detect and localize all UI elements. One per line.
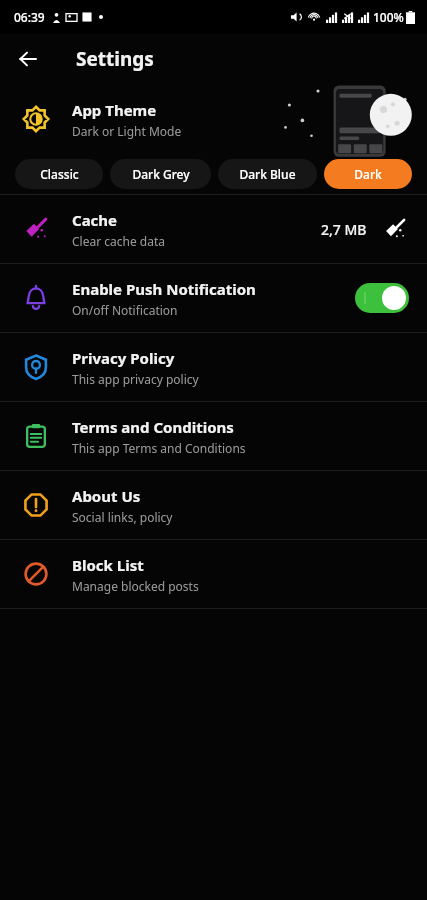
staticText: This app Terms and Conditions — [72, 440, 246, 456]
staticText: Dark Blue — [239, 166, 296, 182]
button[interactable]: Cache — [0, 195, 427, 263]
staticText: About Us — [72, 486, 141, 506]
button[interactable]: About Us — [0, 471, 427, 539]
button[interactable]: Dark Grey — [110, 159, 211, 189]
button[interactable]: Enable Push Notification toggle — [355, 283, 409, 313]
staticText: Privacy Policy — [72, 348, 175, 368]
button[interactable]: Classic — [15, 159, 103, 189]
button[interactable]: Terms and Conditions — [0, 402, 427, 470]
staticText: App Theme — [72, 100, 157, 120]
staticText: Dark Grey — [132, 166, 190, 182]
staticText: On/off Notification — [72, 302, 178, 318]
staticText: Dark or Light Mode — [72, 123, 182, 139]
button[interactable]: Dark — [324, 159, 412, 189]
staticText: 2,7 MB — [321, 220, 367, 239]
staticText: This app privacy policy — [72, 371, 199, 387]
staticText: 100% — [373, 9, 404, 25]
staticText: Cache — [72, 210, 118, 230]
button[interactable]: Block List — [0, 540, 427, 608]
button[interactable]: Back — [8, 39, 48, 79]
staticText: Classic — [40, 166, 79, 182]
staticText: Terms and Conditions — [72, 417, 234, 437]
staticText: Social links, policy — [72, 509, 173, 525]
button[interactable]: Enable Push Notification — [0, 264, 427, 332]
staticText: Dark — [354, 166, 382, 182]
button[interactable]: App Theme — [0, 84, 427, 154]
staticText: Clear cache data — [72, 233, 165, 249]
staticText: Settings — [76, 46, 154, 72]
staticText: Manage blocked posts — [72, 578, 199, 594]
staticText: Enable Push Notification — [72, 279, 256, 299]
button[interactable]: Dark Blue — [218, 159, 317, 189]
staticText: Block List — [72, 555, 144, 575]
staticText: 06:39 — [14, 9, 45, 25]
button[interactable]: Privacy Policy — [0, 333, 427, 401]
